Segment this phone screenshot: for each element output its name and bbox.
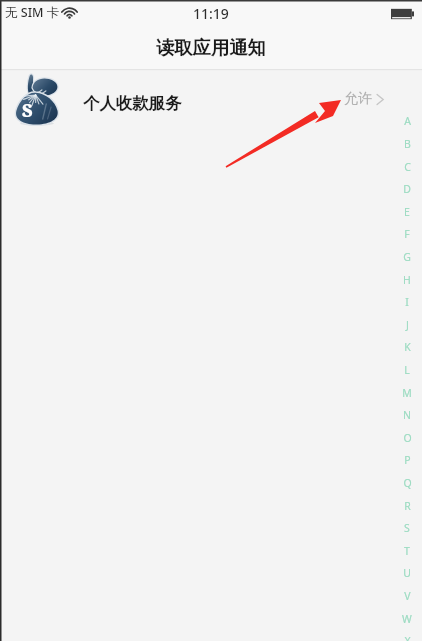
staticText: C bbox=[404, 160, 411, 174]
staticText: S bbox=[404, 521, 410, 535]
button[interactable]: E bbox=[396, 201, 418, 222]
button[interactable]: U bbox=[396, 562, 418, 583]
staticText: V bbox=[404, 589, 411, 603]
staticText: T bbox=[404, 544, 410, 558]
button[interactable]: K bbox=[396, 336, 418, 357]
button[interactable]: I bbox=[396, 291, 418, 312]
button[interactable]: L bbox=[396, 359, 418, 380]
button[interactable]: G bbox=[396, 246, 418, 267]
staticText: D bbox=[403, 182, 411, 196]
button[interactable]: T bbox=[396, 540, 418, 561]
staticText: E bbox=[404, 205, 410, 219]
other: Wi-Fi signal bbox=[61, 6, 78, 19]
button[interactable]: C bbox=[396, 156, 418, 177]
staticText: B bbox=[404, 137, 411, 151]
staticText: F bbox=[404, 227, 410, 241]
staticText: L bbox=[404, 363, 410, 377]
button[interactable]: A bbox=[396, 110, 418, 131]
other: 个人收款服务 app icon bbox=[15, 75, 59, 125]
button[interactable]: H bbox=[396, 269, 418, 290]
button[interactable]: M bbox=[396, 382, 418, 403]
staticText: 读取应用通知 bbox=[156, 36, 266, 59]
staticText: 11:19 bbox=[193, 4, 229, 23]
staticText: N bbox=[403, 408, 411, 422]
staticText: J bbox=[406, 318, 409, 332]
staticText: A bbox=[404, 114, 411, 128]
staticText: Q bbox=[403, 476, 412, 490]
button[interactable]: O bbox=[396, 427, 418, 448]
staticText: 无 SIM 卡 bbox=[5, 4, 60, 21]
button[interactable]: X bbox=[396, 630, 418, 641]
button[interactable]: V bbox=[396, 585, 418, 606]
button[interactable]: D bbox=[396, 178, 418, 199]
staticText: X bbox=[404, 634, 411, 641]
button[interactable]: Q bbox=[396, 472, 418, 493]
staticText: P bbox=[404, 453, 411, 467]
button[interactable]: B bbox=[396, 133, 418, 154]
staticText: K bbox=[404, 340, 411, 354]
staticText: H bbox=[403, 273, 411, 287]
staticText: O bbox=[403, 431, 412, 445]
button[interactable]: R bbox=[396, 495, 418, 516]
button[interactable]: W bbox=[396, 608, 418, 629]
staticText: W bbox=[402, 612, 412, 626]
staticText: G bbox=[403, 250, 411, 264]
button[interactable]: 个人收款服务 app icon bbox=[0, 69, 422, 131]
other: Battery full bbox=[391, 8, 414, 20]
button[interactable]: J bbox=[396, 314, 418, 335]
button[interactable]: S bbox=[396, 517, 418, 538]
staticText: I bbox=[405, 295, 409, 309]
button[interactable]: P bbox=[396, 449, 418, 470]
button[interactable]: F bbox=[396, 223, 418, 244]
staticText: U bbox=[403, 566, 411, 580]
staticText: M bbox=[402, 386, 412, 400]
button[interactable]: 允许 bbox=[342, 69, 387, 131]
staticText: 个人收款服务 bbox=[83, 93, 182, 114]
staticText: 允许 bbox=[344, 90, 372, 108]
staticText: S bbox=[22, 98, 33, 122]
button[interactable]: N bbox=[396, 404, 418, 425]
staticText: R bbox=[404, 499, 411, 513]
